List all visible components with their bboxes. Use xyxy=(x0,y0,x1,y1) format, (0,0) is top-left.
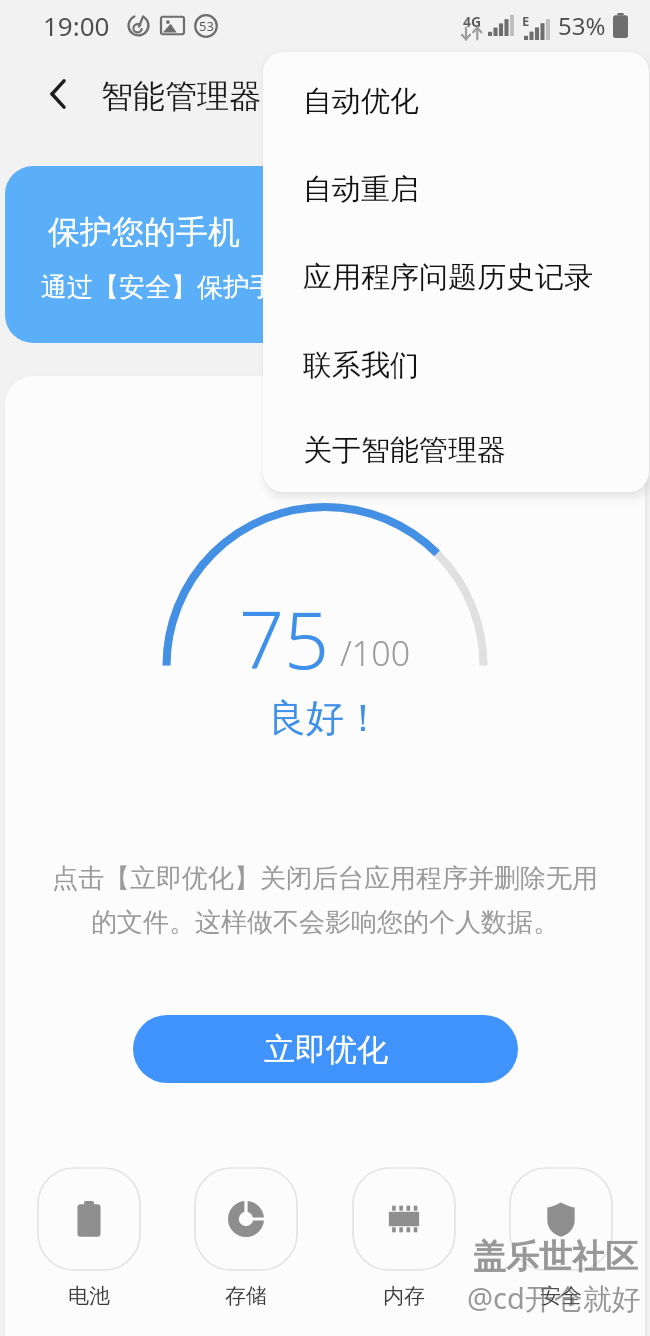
staticText: 良好！ xyxy=(268,694,382,742)
button[interactable]: 自动优化 xyxy=(263,57,649,145)
button[interactable]: 关于智能管理器 xyxy=(263,409,649,492)
button[interactable]: Back xyxy=(27,63,89,125)
staticText: E xyxy=(522,12,530,30)
staticText: 立即优化 xyxy=(264,1030,388,1069)
staticText: 75 xyxy=(239,585,330,693)
staticText: /100 xyxy=(340,630,411,676)
staticText: 关于智能管理器 xyxy=(303,432,506,469)
staticText: 联系我们 xyxy=(303,347,419,384)
button[interactable]: 应用程序问题历史记录 xyxy=(263,233,649,321)
staticText: 内存 xyxy=(383,1283,425,1309)
staticText: 保护您的手机 xyxy=(48,212,240,252)
button[interactable]: 自动重启 xyxy=(263,145,649,233)
staticText: @cd开仓就好 xyxy=(467,1278,641,1318)
staticText: 应用程序问题历史记录 xyxy=(303,259,593,296)
staticText: 通过【安全】保护手机 xyxy=(41,271,301,304)
staticText: 4G xyxy=(463,12,482,31)
staticText: 自动重启 xyxy=(303,171,419,208)
button[interactable]: 安全 xyxy=(510,1168,612,1309)
staticText: 点击【立即优化】关闭后台应用程序并删除无用 的文件。这样做不会影响您的个人数据。 xyxy=(47,862,603,939)
button[interactable]: 电池 xyxy=(38,1168,140,1309)
button[interactable]: 保护您的手机 xyxy=(5,166,645,343)
staticText: 53 xyxy=(199,17,214,35)
staticText: 智能管理器 xyxy=(101,76,261,116)
staticText: 自动优化 xyxy=(303,83,419,120)
button[interactable]: 联系我们 xyxy=(263,321,649,409)
staticText: 53% xyxy=(558,9,606,42)
staticText: 19:00 xyxy=(43,8,110,43)
staticText: 电池 xyxy=(68,1283,110,1309)
button[interactable]: 内存 xyxy=(353,1168,455,1309)
staticText: 盖乐世社区 xyxy=(473,1236,638,1278)
staticText: 存储 xyxy=(225,1283,267,1309)
button[interactable]: 立即优化 xyxy=(133,1015,518,1083)
staticText: 安全 xyxy=(540,1283,582,1309)
button[interactable]: 存储 xyxy=(195,1168,297,1309)
